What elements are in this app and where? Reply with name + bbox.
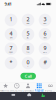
staticText: 0	[26, 59, 29, 66]
staticText: Keypad	[35, 89, 44, 92]
button[interactable]: 7	[5, 42, 17, 55]
staticText: #	[43, 59, 46, 66]
button[interactable]: Call	[20, 73, 36, 79]
staticText: *	[9, 59, 12, 66]
button[interactable]: Recents	[11, 82, 22, 92]
button[interactable]: 3	[39, 14, 51, 26]
staticText: 9:41	[4, 1, 11, 7]
button[interactable]: Favorites	[0, 82, 11, 92]
staticText: Contacts	[22, 89, 33, 92]
button[interactable]: 9	[39, 42, 51, 55]
button[interactable]: Voicemail	[45, 82, 56, 92]
staticText: MNO	[43, 37, 46, 39]
staticText: 7	[9, 44, 12, 51]
staticText: JKL	[27, 37, 29, 39]
staticText: ABC	[26, 23, 29, 24]
staticText: Call	[25, 73, 32, 79]
staticText: TUV	[26, 51, 29, 53]
staticText: PQRS	[9, 51, 13, 53]
button[interactable]: 1	[5, 14, 17, 26]
button[interactable]: 4	[5, 28, 17, 41]
staticText: 6	[43, 30, 46, 37]
button[interactable]: Keypad	[34, 82, 45, 92]
staticText: 1	[9, 16, 12, 23]
button[interactable]: Contacts	[22, 82, 34, 92]
button[interactable]: 2	[22, 14, 34, 26]
button[interactable]: 6	[39, 28, 51, 41]
staticText: 4	[9, 30, 12, 37]
staticText: WXYZ	[43, 51, 47, 53]
staticText: 9	[43, 44, 46, 51]
button[interactable]: 8	[22, 42, 34, 55]
button[interactable]: 5	[22, 28, 34, 41]
staticText: DEF	[43, 23, 46, 24]
staticText: Favorites	[0, 89, 11, 92]
staticText: Recents	[11, 89, 22, 92]
staticText: Voicemail	[45, 89, 56, 92]
staticText: 3	[43, 16, 46, 23]
staticText: 5	[26, 30, 29, 37]
button[interactable]: #	[39, 57, 51, 69]
button[interactable]: 0	[22, 57, 34, 69]
staticText: 2	[26, 16, 29, 23]
staticText: GHI	[10, 37, 12, 39]
button[interactable]: *	[5, 57, 17, 69]
staticText: 8	[26, 44, 29, 51]
